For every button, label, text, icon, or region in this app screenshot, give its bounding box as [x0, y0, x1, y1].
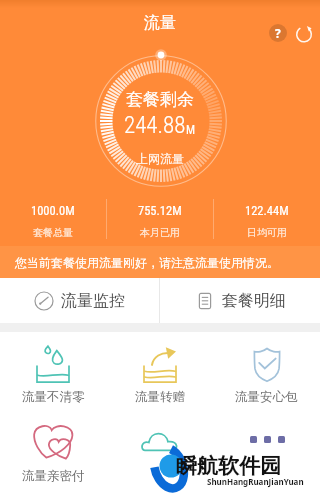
button[interactable]: 流量不清零 [0, 344, 106, 405]
staticText: ShunHangRuanJianYuan [207, 476, 304, 487]
button[interactable]: 您当前套餐使用流量刚好，请注意流量使用情况。 [0, 246, 320, 278]
button[interactable]: 流量监控 [0, 278, 159, 323]
button[interactable]: 流量亲密付 [0, 423, 106, 484]
staticText: 流量安心包 [235, 389, 298, 405]
staticText: 流量监控 [61, 291, 125, 311]
button[interactable]: 套餐明细 [160, 278, 320, 323]
button[interactable]: 122.44M [214, 199, 320, 239]
staticText: 755.12M [138, 203, 182, 218]
staticText: 流量不清零 [22, 389, 85, 405]
staticText: 流量 [144, 13, 176, 33]
staticText: 122.44M [245, 203, 289, 218]
staticText: 您当前套餐使用流量刚好，请注意流量使用情况。 [15, 255, 279, 270]
staticText: 上网流量 [136, 151, 184, 166]
button[interactable] [106, 423, 213, 485]
staticText: ? [275, 25, 281, 41]
staticText: 日均可用 [247, 226, 287, 239]
staticText: 1000.0M [31, 203, 75, 218]
button[interactable]: Refresh [294, 24, 314, 44]
button[interactable]: 流量转赠 [106, 344, 213, 405]
staticText: 流量转赠 [135, 389, 185, 405]
staticText: 流量亲密付 [22, 468, 85, 484]
button[interactable]: Help [269, 24, 287, 42]
staticText: 套餐明细 [222, 291, 286, 311]
button[interactable]: 流量安心包 [213, 344, 320, 405]
staticText: 本月已用 [140, 226, 180, 239]
staticText: 瞬航软件园 [176, 453, 281, 479]
button[interactable]: 1000.0M [0, 199, 106, 239]
staticText: 套餐总量 [33, 226, 73, 239]
staticText: M [186, 123, 196, 137]
button[interactable]: 755.12M [107, 199, 213, 239]
staticText: 套餐剩余 [126, 89, 194, 110]
staticText: 244.88 [124, 112, 186, 139]
